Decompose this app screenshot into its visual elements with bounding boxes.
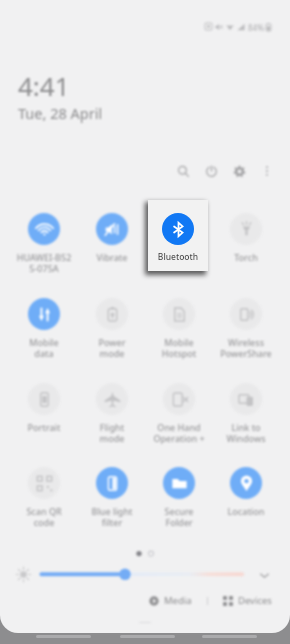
button[interactable]: Vibrate (79, 213, 145, 263)
staticText: HUAWEI-B52 5-075A (11, 251, 77, 274)
staticText: Vibrate (79, 251, 145, 263)
button[interactable]: Bluetooth (148, 200, 208, 271)
button[interactable]: More options (256, 160, 278, 182)
staticText: Wireless PowerShare (213, 336, 279, 359)
button[interactable]: Blue light filter (79, 467, 145, 528)
button[interactable]: Media (146, 592, 195, 609)
button[interactable]: Devices (220, 592, 275, 609)
staticText: Torch (213, 251, 279, 263)
button[interactable]: Wireless PowerShare (213, 298, 279, 359)
staticText: Bluetooth (146, 251, 212, 263)
button[interactable]: Secure Folder (146, 467, 212, 528)
staticText: Link to Windows (213, 421, 279, 444)
staticText: Secure Folder (146, 505, 212, 528)
staticText: Blue light filter (79, 505, 145, 528)
button[interactable]: Scan QR code (11, 467, 77, 528)
button[interactable]: Mobile data (11, 298, 77, 359)
button[interactable]: Expand brightness settings (254, 565, 274, 585)
staticText: 84% (248, 22, 264, 31)
button[interactable]: Power off (200, 160, 222, 182)
button[interactable]: Settings (228, 160, 250, 182)
staticText: Devices (238, 594, 272, 607)
staticText: Location (213, 505, 279, 517)
button[interactable]: Flight mode (79, 383, 145, 444)
staticText: Mobile data (11, 336, 77, 359)
button[interactable]: Mobile Hotspot (146, 298, 212, 359)
staticText: One Hand Operation + (146, 421, 212, 444)
staticText: Flight mode (79, 421, 145, 444)
staticText: Bluetooth (148, 251, 208, 263)
staticText: Media (164, 594, 192, 607)
staticText: Mobile Hotspot (146, 336, 212, 359)
button[interactable]: HUAWEI-B52 5-075A (11, 213, 77, 274)
staticText: Tue, 28 April (18, 103, 103, 123)
button[interactable]: Search (172, 160, 194, 182)
staticText: Power mode (79, 336, 145, 359)
button[interactable]: Power mode (79, 298, 145, 359)
button[interactable]: Location (213, 467, 279, 517)
button[interactable]: Link to Windows (213, 383, 279, 444)
button[interactable]: One Hand Operation + (146, 383, 212, 444)
staticText: Portrait (11, 421, 77, 433)
staticText: 4:41 (18, 68, 70, 103)
staticText: Scan QR code (11, 505, 77, 528)
button[interactable]: Portrait (11, 383, 77, 433)
button[interactable]: Bluetooth (146, 213, 212, 263)
button[interactable]: Torch (213, 213, 279, 263)
